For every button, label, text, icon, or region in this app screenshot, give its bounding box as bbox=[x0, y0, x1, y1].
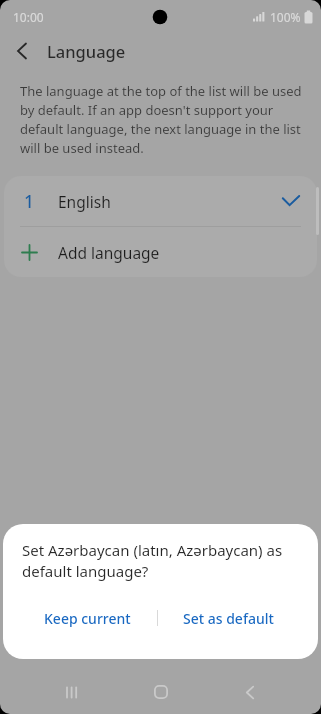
staticText: The language at the top of the list will… bbox=[20, 82, 302, 157]
button[interactable] bbox=[133, 670, 189, 714]
button[interactable] bbox=[222, 670, 278, 714]
staticText: Set as default bbox=[183, 609, 274, 628]
button[interactable]: Keep current bbox=[17, 597, 157, 639]
staticText: 100% bbox=[270, 9, 301, 25]
staticText: 10:00 bbox=[13, 9, 44, 25]
button[interactable] bbox=[0, 34, 44, 67]
staticText: Language bbox=[47, 40, 126, 62]
button[interactable]: Add language bbox=[4, 227, 317, 277]
button[interactable] bbox=[44, 670, 100, 714]
button[interactable]: Set as default bbox=[158, 597, 299, 639]
button[interactable]: 1 bbox=[4, 176, 317, 226]
staticText: English bbox=[58, 191, 111, 212]
staticText: 1 bbox=[24, 189, 35, 213]
staticText: Add language bbox=[58, 242, 160, 263]
staticText: Keep current bbox=[44, 609, 131, 628]
staticText: Set Azərbaycan (latın, Azərbaycan) as de… bbox=[22, 540, 283, 582]
